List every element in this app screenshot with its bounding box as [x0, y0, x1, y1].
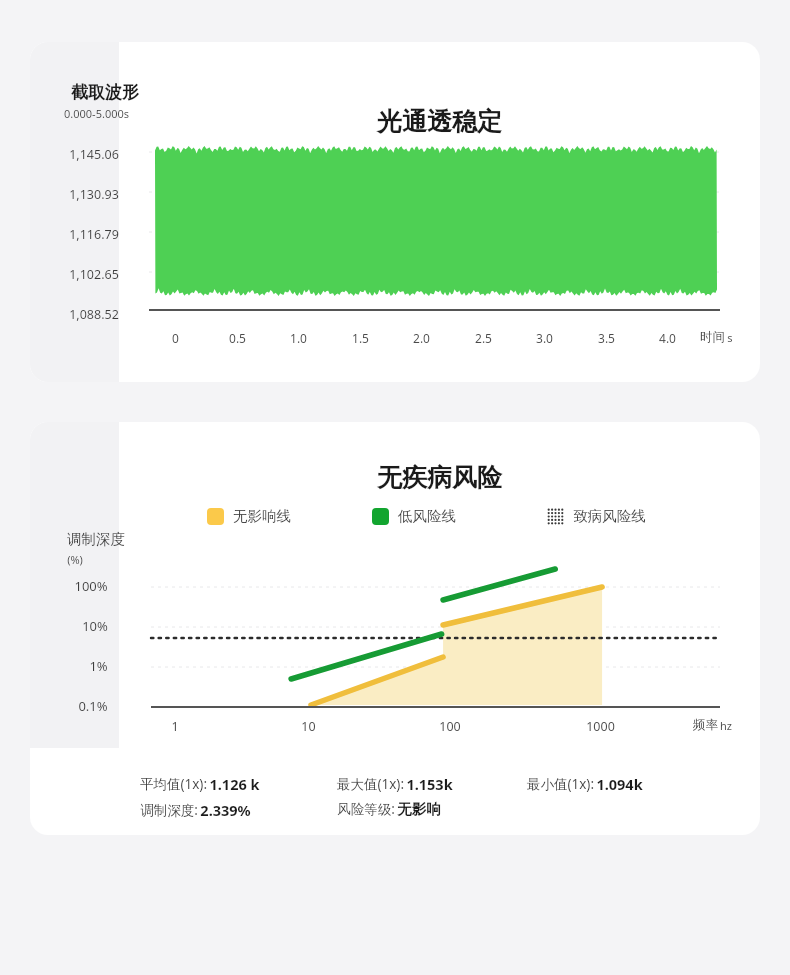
button[interactable]: 调制深度	[30, 422, 760, 835]
staticText: 1	[171, 718, 179, 735]
staticText: 1.126 k	[209, 774, 260, 794]
staticText: 无影响线	[233, 507, 291, 525]
staticText: 最大值(1x):	[335, 775, 406, 793]
staticText: 0.1%	[78, 697, 108, 715]
button[interactable]: 无影响线	[205, 505, 293, 527]
staticText: 1000	[586, 718, 615, 735]
other: 致病风险线	[547, 508, 564, 525]
staticText: 1,088.52	[69, 306, 119, 323]
staticText: 4.0	[659, 330, 676, 346]
staticText: 1,130.93	[69, 186, 119, 203]
staticText: (%)	[67, 552, 83, 567]
staticText: 风险等级:	[335, 800, 397, 818]
staticText: 3.5	[598, 330, 615, 346]
staticText: hz	[720, 718, 732, 733]
staticText: 2.5	[475, 330, 492, 346]
staticText: 1.094k	[596, 774, 643, 794]
staticText: 1.5	[352, 330, 369, 346]
staticText: 最小值(1x):	[525, 775, 596, 793]
staticText: 2.339%	[200, 800, 251, 820]
staticText: 100%	[74, 577, 108, 595]
button[interactable]: 致病风险线	[545, 505, 648, 527]
staticText: 1,116.79	[69, 226, 119, 243]
staticText: s	[727, 330, 733, 345]
staticText: 1.153k	[406, 774, 453, 794]
staticText: 1.0	[290, 330, 307, 346]
staticText: 0.5	[229, 330, 246, 346]
staticText: 频率	[693, 717, 718, 733]
staticText: 光通透稳定	[377, 106, 502, 137]
staticText: 调制深度	[67, 530, 125, 548]
staticText: 平均值(1x):	[138, 775, 209, 793]
staticText: 2.0	[413, 330, 430, 346]
button[interactable]: 低风险线	[370, 505, 458, 527]
staticText: 1,102.65	[69, 266, 119, 283]
staticText: 3.0	[536, 330, 553, 346]
staticText: 10	[301, 718, 316, 735]
staticText: 无影响	[397, 800, 441, 818]
staticText: 10%	[82, 617, 108, 635]
staticText: 1%	[89, 657, 108, 675]
staticText: 时间	[700, 329, 725, 345]
button[interactable]: 截取波形	[30, 42, 760, 382]
staticText: 致病风险线	[573, 507, 646, 525]
staticText: 无疾病风险	[377, 462, 502, 493]
staticText: 100	[439, 718, 461, 735]
staticText: 低风险线	[398, 507, 456, 525]
staticText: 0	[172, 330, 179, 346]
staticText: 0.000-5.000s	[64, 106, 130, 121]
staticText: 调制深度:	[138, 801, 200, 819]
staticText: 1,145.06	[69, 146, 119, 163]
staticText: 截取波形	[71, 82, 139, 103]
